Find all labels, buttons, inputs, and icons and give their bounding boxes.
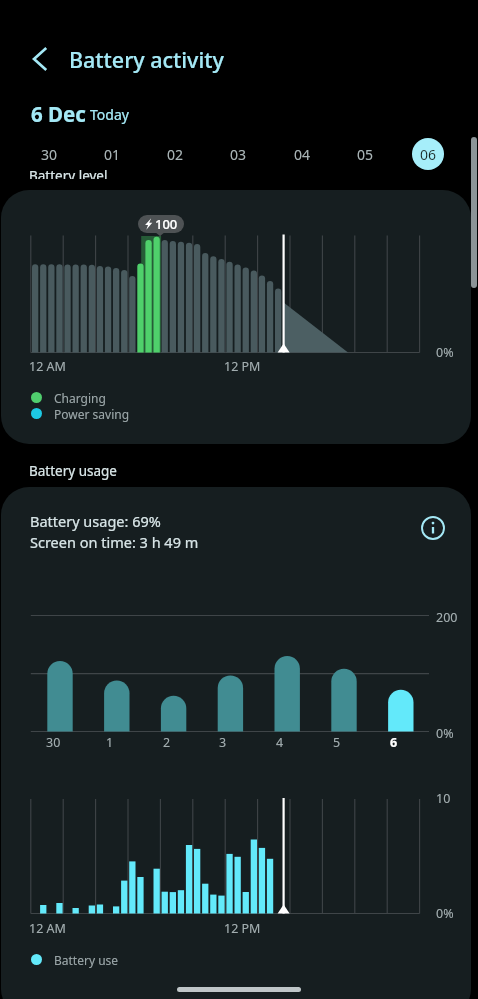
staticText: Battery usage: [29, 462, 117, 480]
staticText: 200: [436, 609, 458, 626]
staticText: 0%: [436, 725, 454, 742]
staticText: 0%: [436, 344, 454, 361]
staticText: 12 PM: [224, 358, 261, 375]
staticText: 6: [390, 734, 398, 751]
staticText: 1: [106, 734, 114, 751]
staticText: Today: [90, 105, 129, 124]
staticText: 02: [167, 145, 184, 164]
button[interactable]: 04: [281, 133, 323, 175]
button[interactable]: 06: [407, 133, 449, 175]
staticText: 12 AM: [29, 358, 66, 375]
staticText: 0%: [436, 905, 454, 922]
staticText: 10: [436, 790, 451, 807]
staticText: 06: [420, 145, 437, 164]
staticText: 05: [357, 145, 374, 164]
staticText: 3: [219, 734, 227, 751]
button[interactable]: 05: [344, 133, 386, 175]
staticText: Battery activity: [69, 45, 224, 74]
staticText: 4: [276, 734, 284, 751]
staticText: 04: [294, 145, 311, 164]
staticText: Screen on time: 3 h 49 m: [30, 532, 199, 552]
staticText: Charging: [54, 390, 106, 406]
button[interactable]: Back: [20, 39, 60, 79]
staticText: Battery usage: 69%: [30, 511, 161, 531]
staticText: 100: [155, 215, 178, 233]
staticText: 30: [41, 145, 58, 164]
staticText: 01: [104, 145, 121, 164]
staticText: 12 AM: [29, 920, 66, 937]
staticText: Battery use: [54, 952, 119, 968]
staticText: Battery level: [29, 168, 108, 179]
staticText: 03: [230, 145, 247, 164]
staticText: 12 PM: [224, 920, 261, 937]
staticText: 6 Dec: [31, 100, 86, 128]
button[interactable]: Information: [418, 513, 448, 543]
button[interactable]: 01: [91, 133, 133, 175]
staticText: 5: [333, 734, 341, 751]
staticText: Power saving: [54, 406, 130, 422]
button[interactable]: 03: [217, 133, 259, 175]
staticText: 2: [163, 734, 171, 751]
button[interactable]: 02: [154, 133, 196, 175]
staticText: 30: [46, 734, 61, 751]
button[interactable]: 30: [28, 133, 70, 175]
